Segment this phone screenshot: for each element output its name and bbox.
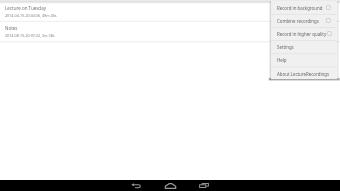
staticText: 2014-04-15-20:04:36, 49m 45s [5,13,57,18]
staticText: Lecture on Tuesday [5,5,46,11]
button[interactable]: Settings [271,40,337,53]
button[interactable]: Record in background [271,1,337,14]
button[interactable]: Lecture on Tuesday [0,4,340,21]
button[interactable]: Notes [0,24,340,42]
staticText: About LectureRecordings [277,71,330,77]
button[interactable]: Home [156,180,184,191]
staticText: Notes [5,25,18,31]
staticText: Record in higher quality [277,31,327,37]
button[interactable]: Combine recordings [271,14,337,27]
staticText: Combine recordings [277,18,319,24]
staticText: 2014-08-15-20:07:32, 2m 38s [5,33,55,38]
staticText: Record in background [277,5,323,11]
staticText: Help [277,57,287,63]
button[interactable]: Help [271,53,337,66]
button[interactable]: Record in higher quality [271,27,337,40]
staticText: Settings [277,44,294,50]
button[interactable]: About LectureRecordings [271,67,337,80]
button[interactable]: Back [122,180,150,191]
button[interactable]: Recent apps [190,180,218,191]
